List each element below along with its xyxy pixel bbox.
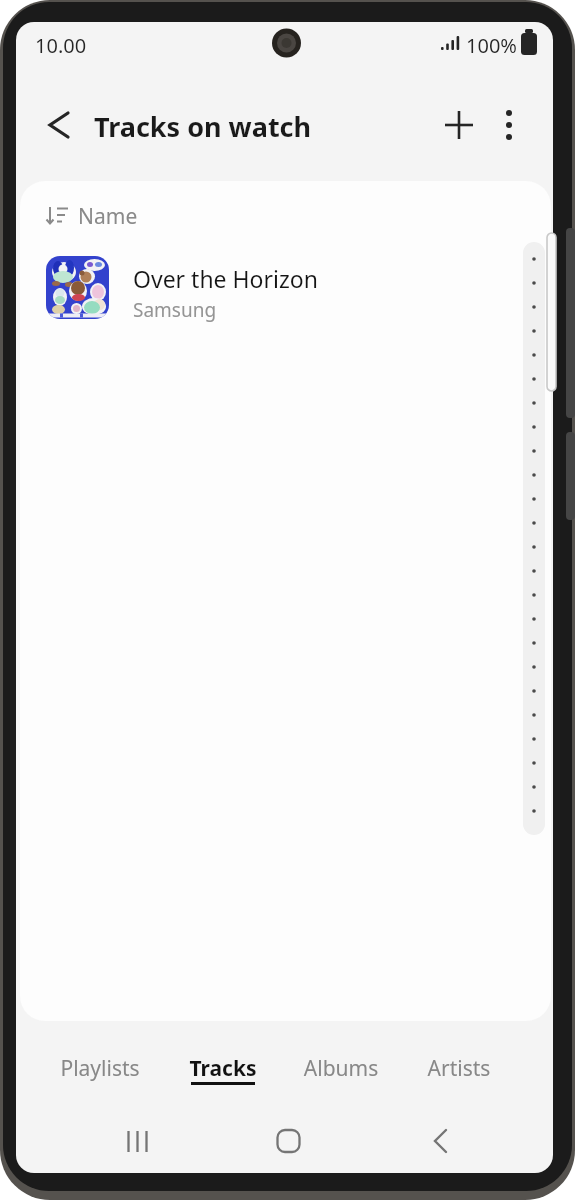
- button[interactable]: Playlists: [44, 1042, 156, 1090]
- staticText: Playlists: [44, 1054, 156, 1102]
- button[interactable]: [488, 104, 530, 146]
- staticText: Tracks: [167, 1054, 279, 1102]
- staticText: Samsung: [133, 297, 217, 323]
- staticText: Albums: [285, 1054, 397, 1102]
- button[interactable]: Artists: [403, 1042, 515, 1090]
- button[interactable]: [109, 1111, 169, 1171]
- staticText: Tracks on watch: [94, 108, 312, 145]
- button[interactable]: [258, 1111, 318, 1171]
- button[interactable]: [410, 1111, 470, 1171]
- button[interactable]: [38, 104, 80, 146]
- staticText: Over the Horizon: [133, 263, 318, 294]
- staticText: 10.00: [35, 32, 87, 59]
- button[interactable]: Name: [34, 196, 174, 238]
- staticText: Name: [78, 202, 138, 231]
- button[interactable]: Albums: [285, 1042, 397, 1090]
- button[interactable]: Over the Horizon: [32, 244, 512, 332]
- button[interactable]: [438, 104, 480, 146]
- button[interactable]: Tracks: [167, 1042, 279, 1090]
- staticText: 100%: [466, 32, 517, 59]
- staticText: Artists: [403, 1054, 515, 1102]
